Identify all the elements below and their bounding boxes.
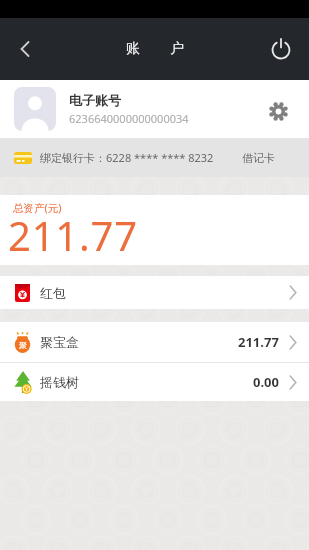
staticText: 红包 xyxy=(40,285,66,301)
staticText: 户 xyxy=(170,40,184,58)
staticText: 6236640000000000034 xyxy=(69,111,189,126)
button[interactable]: 摇钱树 xyxy=(0,363,309,401)
staticText: 绑定银行卡：6228 **** **** 8232 xyxy=(40,150,214,165)
staticText: 账 xyxy=(126,40,140,58)
staticText: 借记卡 xyxy=(242,151,275,165)
button[interactable] xyxy=(263,31,299,67)
staticText: 211.77 xyxy=(8,208,138,262)
staticText: 0.00 xyxy=(253,373,279,391)
staticText: 聚宝盒 xyxy=(40,334,79,350)
staticText: 211.77 xyxy=(238,333,279,351)
button[interactable]: 聚 xyxy=(0,322,309,362)
button[interactable] xyxy=(263,96,293,126)
staticText: 摇钱树 xyxy=(40,374,79,390)
staticText: 聚 xyxy=(19,340,27,350)
staticText: 电子账号 xyxy=(69,92,121,108)
button[interactable]: 红包 xyxy=(0,276,309,309)
button[interactable] xyxy=(8,31,44,67)
staticText: 总资产(元) xyxy=(13,201,62,215)
button[interactable]: 绑定银行卡：6228 **** **** 8232 xyxy=(0,138,309,177)
button[interactable]: 电子账号 xyxy=(0,80,309,138)
